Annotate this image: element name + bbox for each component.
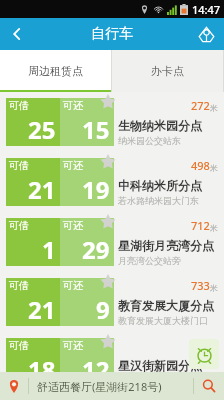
staticText: 星汉街新园分点 bbox=[118, 358, 202, 373]
button[interactable]: Location bbox=[0, 372, 28, 400]
staticText: 18 bbox=[28, 353, 56, 386]
staticText: 可借 bbox=[9, 159, 29, 172]
staticText: 周边租赁点 bbox=[28, 64, 83, 78]
staticText: 可借 bbox=[9, 219, 29, 232]
button[interactable]: 可借 bbox=[0, 152, 224, 212]
staticText: 498 bbox=[191, 158, 210, 173]
staticText: 办卡点 bbox=[151, 64, 184, 78]
button[interactable]: Reminder bbox=[189, 339, 219, 369]
staticText: 教育发展大厦大楼门口 bbox=[118, 315, 208, 326]
staticText: 733 bbox=[191, 278, 210, 293]
staticText: 25 bbox=[28, 113, 56, 146]
staticText: 810 bbox=[191, 338, 210, 353]
staticText: 教育发展大厦分点 bbox=[118, 298, 214, 313]
staticText: 712 bbox=[191, 218, 210, 233]
button[interactable]: 舒适西餐厅(星湖街218号) bbox=[37, 372, 193, 400]
staticText: 可借 bbox=[9, 279, 29, 292]
staticText: 米 bbox=[210, 163, 218, 173]
button[interactable]: 周边租赁点 bbox=[0, 50, 111, 92]
staticText: 19 bbox=[82, 173, 110, 206]
button[interactable]: 可借 bbox=[0, 212, 224, 272]
staticText: 米 bbox=[210, 343, 218, 353]
staticText: 中科纳米所分点 bbox=[118, 178, 202, 193]
staticText: 可还 bbox=[63, 279, 83, 292]
staticText: 米 bbox=[210, 283, 218, 293]
staticText: 21 bbox=[28, 173, 56, 206]
staticText: 可借 bbox=[9, 99, 29, 112]
staticText: 舒适西餐厅(星湖街218号) bbox=[37, 379, 162, 394]
button[interactable]: Map bbox=[188, 18, 224, 50]
staticText: 12 bbox=[82, 353, 110, 386]
staticText: 自行车 bbox=[91, 25, 133, 43]
staticText: 15 bbox=[82, 113, 110, 146]
button[interactable]: 可借 bbox=[0, 92, 224, 152]
staticText: 生物纳米园分点 bbox=[118, 118, 202, 133]
button[interactable]: 可借 bbox=[0, 272, 224, 332]
staticText: 若水路纳米园大门东 bbox=[118, 195, 199, 206]
button[interactable]: Back bbox=[0, 18, 34, 50]
staticText: 可还 bbox=[63, 219, 83, 232]
button[interactable]: 可借 bbox=[0, 332, 224, 392]
staticText: 可还 bbox=[63, 339, 83, 352]
staticText: 纳米园公交站东 bbox=[118, 135, 181, 146]
staticText: 米 bbox=[210, 223, 218, 233]
button[interactable]: 办卡点 bbox=[112, 50, 223, 92]
staticText: 月亮湾公交站旁 bbox=[118, 255, 181, 266]
staticText: 272 bbox=[191, 98, 210, 113]
staticText: 星湖街月亮湾分点 bbox=[118, 238, 214, 253]
staticText: 9 bbox=[96, 293, 110, 326]
staticText: 可借 bbox=[9, 339, 29, 352]
staticText: 14:47 bbox=[192, 2, 221, 17]
staticText: 21 bbox=[28, 293, 56, 326]
button[interactable]: Search bbox=[194, 372, 224, 400]
staticText: 29 bbox=[82, 233, 110, 266]
staticText: 米 bbox=[210, 103, 218, 113]
staticText: 星汉街新园路口 bbox=[118, 375, 181, 386]
staticText: 可还 bbox=[63, 159, 83, 172]
staticText: 1 bbox=[42, 233, 56, 266]
staticText: 可还 bbox=[63, 99, 83, 112]
